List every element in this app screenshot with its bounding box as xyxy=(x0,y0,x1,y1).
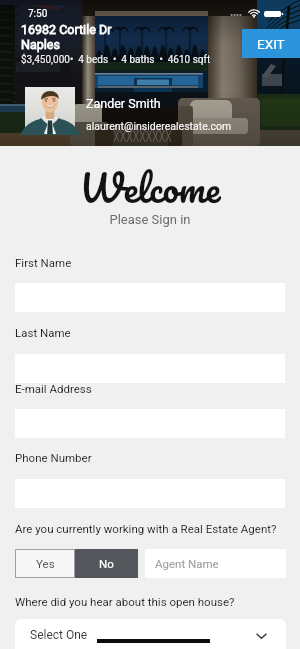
staticText: Welcome xyxy=(0,156,300,219)
staticText: Zander Smith xyxy=(86,96,161,111)
staticText: Agent Name xyxy=(155,557,219,570)
staticText: Phone Number xyxy=(15,451,92,464)
button[interactable]: EXIT xyxy=(242,29,300,58)
staticText: Select One xyxy=(30,628,88,642)
staticText: Last Name xyxy=(15,326,71,339)
staticText: Please Sign in xyxy=(0,212,300,227)
staticText: Naples xyxy=(21,37,60,52)
staticText: First Name xyxy=(15,256,72,269)
button[interactable]: Agent Name xyxy=(145,549,286,578)
button[interactable]: Select One xyxy=(15,619,286,649)
staticText: alaurent@insiderealestate.com xyxy=(86,120,232,132)
other: Expand xyxy=(255,632,268,640)
staticText: 16982 Cortile Dr xyxy=(21,22,112,37)
staticText: $3,450,000• 4 beds • 4 baths • 4610 sqft xyxy=(21,54,211,66)
staticText: Are you currently working with a Real Es… xyxy=(15,522,277,535)
staticText: Where did you hear about this open house… xyxy=(15,595,235,608)
staticText: 7:50 xyxy=(28,8,48,20)
staticText: Yes xyxy=(36,557,55,570)
button[interactable]: Yes xyxy=(15,549,75,578)
staticText: No xyxy=(99,557,114,570)
button[interactable]: No xyxy=(75,549,138,578)
staticText: EXIT xyxy=(257,36,285,52)
staticText: E-mail Address xyxy=(15,382,92,395)
